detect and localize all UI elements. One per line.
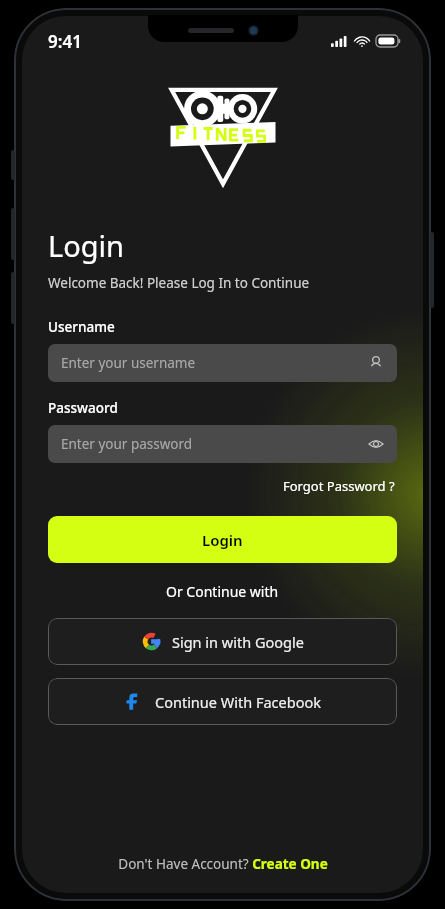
button[interactable]: Don't Have Account? Create One (112, 851, 334, 877)
staticText: Continue With Facebook (155, 692, 321, 712)
staticText: Login (202, 530, 243, 550)
staticText: Forgot Password ? (283, 477, 395, 495)
staticText: Enter your username (61, 354, 368, 372)
other: Show password (368, 436, 384, 452)
staticText: Login (48, 226, 124, 265)
button[interactable]: Login (48, 516, 397, 563)
staticText: Or Continue with (166, 582, 279, 601)
staticText: Sign in with Google (172, 632, 304, 652)
staticText: Don't Have Account? Create One (118, 855, 328, 873)
button[interactable]: Forgot Password ? (281, 475, 397, 497)
button[interactable]: Enter your password (48, 425, 397, 463)
staticText: Enter your password (61, 435, 368, 453)
button[interactable]: Continue With Facebook (48, 678, 397, 725)
button[interactable]: Enter your username (48, 344, 397, 382)
staticText: Welcome Back! Please Log In to Continue (48, 274, 310, 292)
other: Username (368, 355, 384, 371)
staticText: Username (48, 318, 115, 336)
staticText: Passwaord (48, 399, 118, 417)
staticText: 9:41 (48, 30, 82, 53)
button[interactable]: Sign in with Google (48, 618, 397, 665)
